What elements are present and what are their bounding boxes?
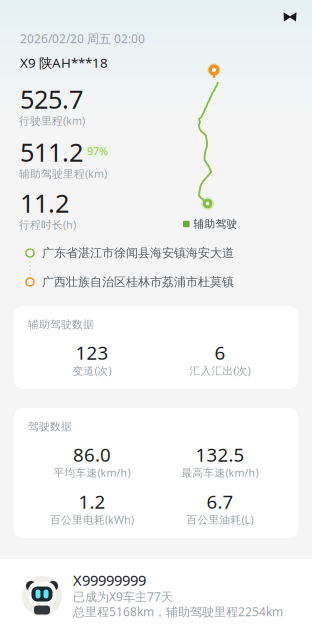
staticText: 132.5 (195, 442, 244, 467)
staticText: 86.0 (73, 442, 111, 467)
staticText: 驾驶数据 (28, 420, 72, 433)
staticText: 6.7 (206, 489, 233, 514)
staticText: X99999999 (73, 570, 146, 590)
button[interactable]: Close (276, 5, 304, 29)
staticText: 百公里电耗(kWh) (50, 512, 134, 527)
staticText: 广西壮族自治区桂林市荔浦市杜莫镇 (42, 275, 234, 289)
staticText: 525.7 (20, 82, 83, 116)
staticText: 2026/02/20 周五 02:00 (20, 30, 145, 46)
staticText: 行驶里程(km) (19, 113, 85, 128)
staticText: 已成为X9车主77天 (73, 588, 173, 604)
staticText: 6 (214, 340, 225, 365)
button[interactable]: X99999999 (0, 559, 312, 636)
staticText: 辅助驾驶 (193, 217, 237, 230)
staticText: 辅助驾驶里程(km) (19, 166, 107, 181)
staticText: 辅助驾驶数据 (28, 318, 94, 331)
staticText: 123 (75, 340, 108, 365)
staticText: 最高车速(km/h) (181, 465, 258, 480)
staticText: 百公里油耗(L) (186, 512, 253, 527)
staticText: X9 陕AH***18 (20, 54, 108, 71)
staticText: 97% (87, 144, 108, 158)
staticText: 11.2 (20, 186, 69, 220)
staticText: 变道(次) (72, 363, 111, 378)
staticText: 511.2 (20, 135, 83, 169)
staticText: 总里程5168km，辅助驾驶里程2254km (73, 603, 283, 619)
staticText: 汇入汇出(次) (189, 363, 250, 378)
staticText: 1.2 (78, 489, 105, 514)
staticText: 广东省湛江市徐闻县海安镇海安大道 (42, 246, 234, 260)
staticText: 行程时长(h) (19, 217, 76, 232)
staticText: 平均车速(km/h) (53, 465, 130, 480)
